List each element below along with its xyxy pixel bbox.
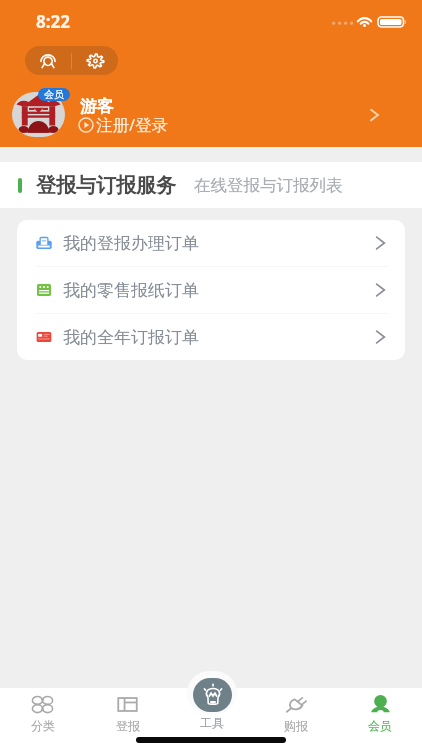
staticText: 8:22 [36, 10, 70, 33]
button[interactable]: 会员 [0, 86, 422, 144]
staticText: 注册/登录 [96, 113, 169, 136]
button[interactable]: 会员 [338, 688, 422, 750]
button[interactable]: 我的零售报纸订单 [17, 267, 405, 313]
staticText: 我的登报办理订单 [63, 233, 199, 254]
staticText: 在线登报与订报列表 [194, 175, 343, 196]
staticText: 会员 [368, 718, 392, 733]
staticText: 游客 [80, 96, 114, 117]
button[interactable]: 我的全年订报订单 [17, 314, 405, 360]
staticText: 登报与订报服务 [36, 173, 176, 198]
staticText: 购报 [284, 718, 308, 733]
button[interactable]: 购报 [254, 688, 338, 750]
staticText: 会员 [44, 88, 64, 101]
button[interactable]: 我的登报办理订单 [17, 220, 405, 266]
button[interactable]: 工具 [170, 688, 254, 750]
staticText: 我的全年订报订单 [63, 327, 199, 348]
button[interactable]: 登报 [85, 688, 170, 750]
staticText: 登报 [116, 718, 140, 733]
button[interactable]: Settings [72, 46, 118, 75]
staticText: 我的零售报纸订单 [63, 280, 199, 301]
staticText: 工具 [200, 715, 224, 730]
staticText: 分类 [31, 718, 55, 733]
button[interactable]: 分类 [0, 688, 85, 750]
button[interactable]: Scan [25, 46, 71, 75]
